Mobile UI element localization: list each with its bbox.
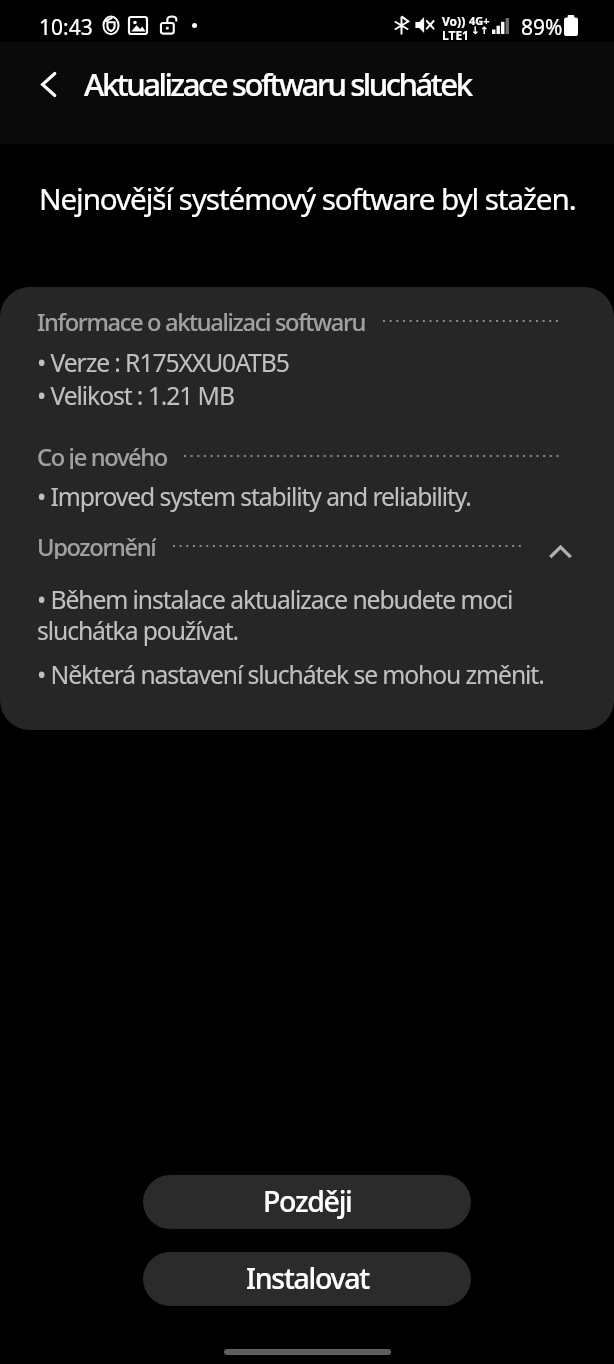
button[interactable]: Později xyxy=(143,1175,471,1229)
staticText: LTE1 xyxy=(442,27,469,43)
staticText: Nejnovější systémový software byl stažen… xyxy=(39,178,576,218)
staticText: Co je nového xyxy=(37,441,167,469)
staticText: 89% xyxy=(521,13,563,42)
staticText: • Některá nastavení sluchátek se mohou z… xyxy=(37,658,544,692)
staticText: • Velikost : 1.21 MB xyxy=(37,379,234,413)
staticText: ↓ xyxy=(471,25,480,37)
staticText: sluchátka používat. xyxy=(37,614,239,648)
staticText: • Během instalace aktualizace nebudete m… xyxy=(37,583,513,617)
staticText: Instalovat xyxy=(246,1259,369,1298)
staticText: Upozornění xyxy=(37,531,156,559)
button[interactable]: Back xyxy=(16,55,82,115)
staticText: Aktualizace softwaru sluchátek xyxy=(84,63,471,105)
button[interactable]: Collapse xyxy=(546,537,574,565)
staticText: • Verze : R175XXU0ATB5 xyxy=(37,346,289,380)
staticText: 4G+ xyxy=(469,13,490,28)
staticText: Vo)) xyxy=(442,13,466,29)
staticText: Později xyxy=(263,1182,352,1221)
staticText: • Improved system stability and reliabil… xyxy=(37,480,471,514)
staticText: ↑ xyxy=(480,25,489,37)
staticText: 10:43 xyxy=(39,13,93,42)
button[interactable]: Instalovat xyxy=(143,1252,471,1306)
staticText: Informace o aktualizaci softwaru xyxy=(37,306,366,334)
